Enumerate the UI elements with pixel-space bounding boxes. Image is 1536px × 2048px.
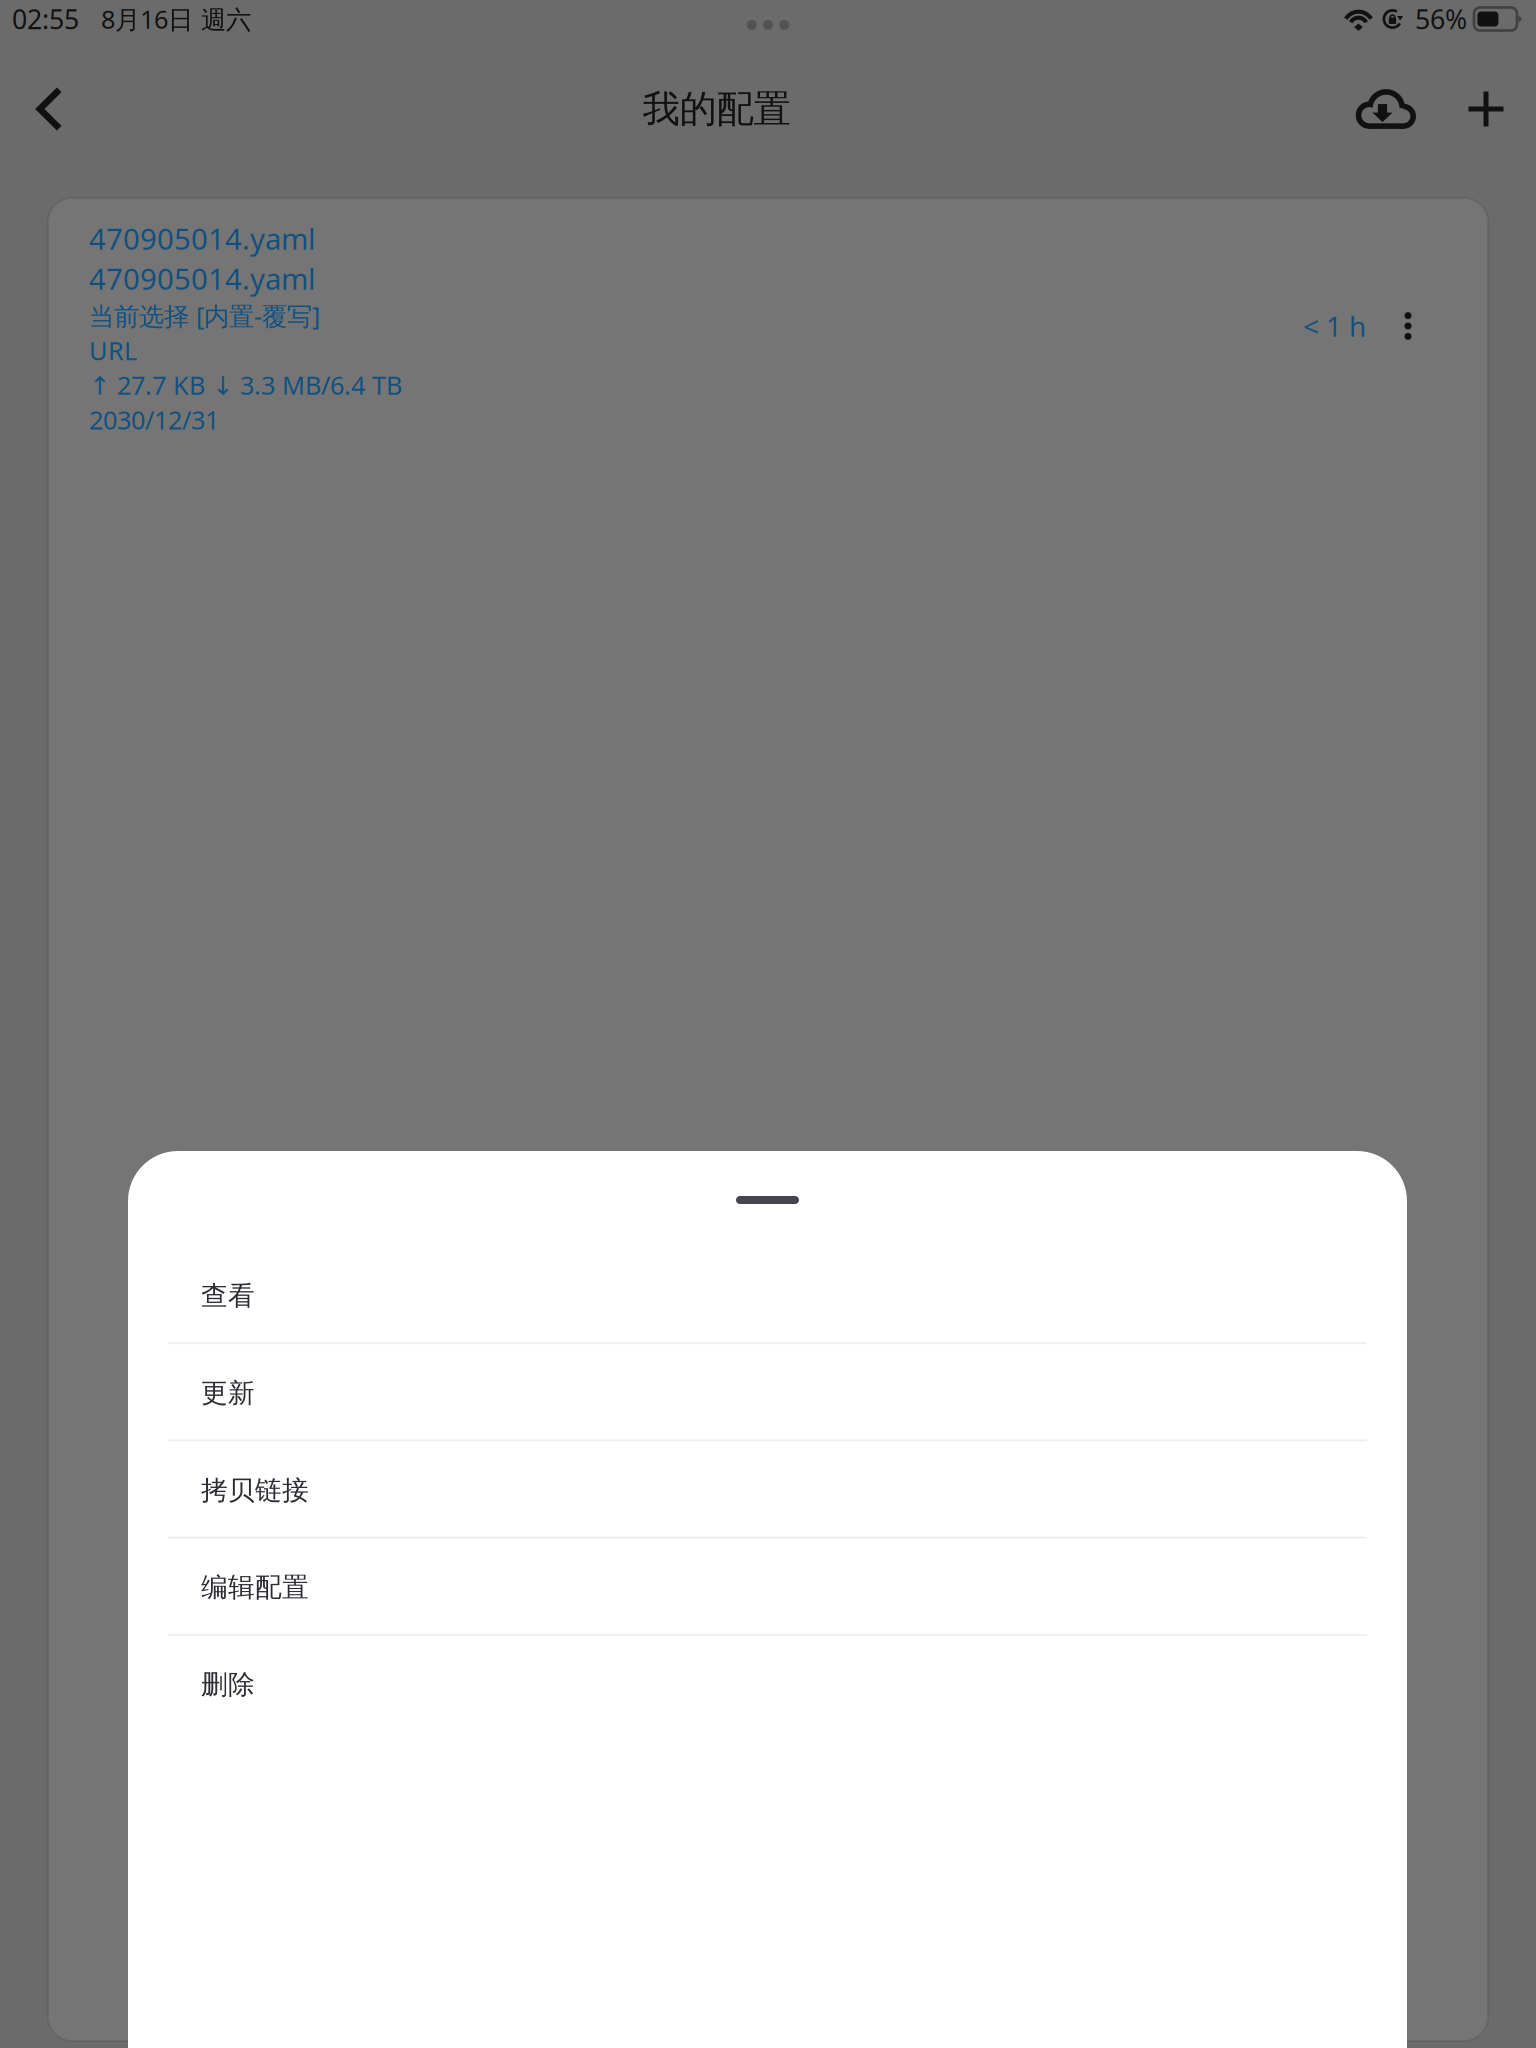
button[interactable]: Download configuration bbox=[1322, 55, 1443, 163]
staticText: 当前选择 [内置-覆写] bbox=[89, 299, 320, 332]
staticText: 2030/12/31 bbox=[89, 403, 219, 436]
staticText: < 1 h bbox=[1303, 307, 1366, 345]
staticText: URL bbox=[89, 333, 137, 367]
staticText: 我的配置 bbox=[642, 86, 790, 132]
button[interactable]: 删除 bbox=[128, 1636, 1407, 1731]
staticText: 删除 bbox=[201, 1668, 255, 1701]
staticText: 470905014.yaml bbox=[89, 219, 316, 258]
staticText: 8月16日 週六 bbox=[101, 2, 251, 36]
button[interactable]: 470905014.yaml bbox=[0, 198, 1536, 2041]
button[interactable]: 编辑配置 bbox=[128, 1539, 1407, 1636]
staticText: 470905014.yaml bbox=[89, 259, 316, 298]
staticText: 编辑配置 bbox=[201, 1571, 309, 1604]
button[interactable]: 更新 bbox=[128, 1344, 1407, 1441]
button[interactable]: Add configuration bbox=[1443, 55, 1529, 163]
button[interactable]: Back bbox=[0, 55, 99, 163]
staticText: ↑ 27.7 KB ↓ 3.3 MB/6.4 TB bbox=[89, 368, 402, 402]
button[interactable]: 查看 bbox=[128, 1247, 1407, 1344]
staticText: 02:55 bbox=[12, 1, 79, 37]
staticText: 更新 bbox=[201, 1377, 255, 1409]
staticText: 查看 bbox=[201, 1279, 255, 1312]
button[interactable]: More actions bbox=[1391, 296, 1425, 356]
staticText: 拷贝链接 bbox=[201, 1474, 309, 1507]
staticText: 56% bbox=[1415, 1, 1467, 37]
button[interactable]: 拷贝链接 bbox=[128, 1441, 1407, 1539]
